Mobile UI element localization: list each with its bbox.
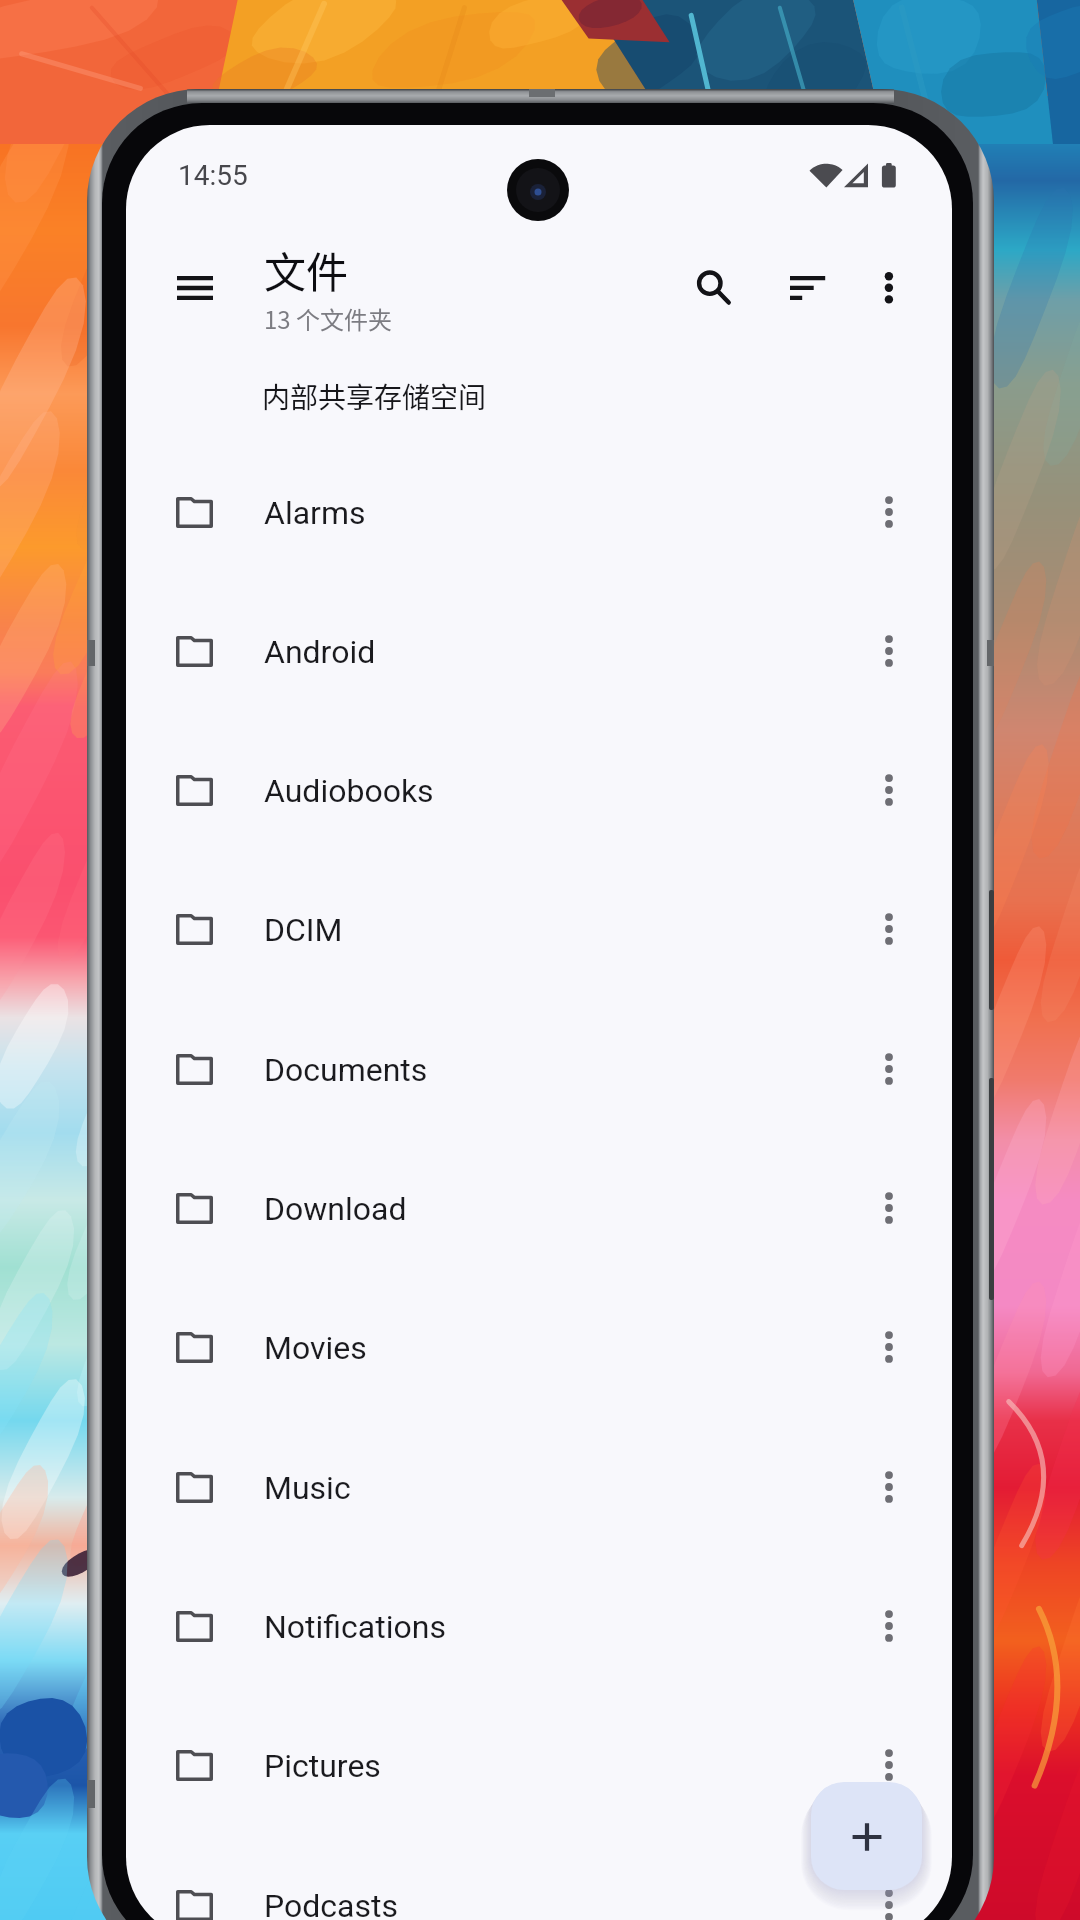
button[interactable]: More options [849, 247, 929, 327]
button[interactable]: Folder options [871, 1836, 907, 1920]
staticText: Download [264, 1190, 407, 1228]
staticText: Notifications [264, 1608, 446, 1646]
button[interactable]: Alarms [126, 443, 952, 581]
button[interactable]: Music [126, 1418, 952, 1556]
button[interactable]: Notifications [126, 1557, 952, 1695]
button[interactable]: Folder options [871, 582, 907, 720]
button[interactable]: Navigation menu [157, 248, 233, 328]
button[interactable]: Movies [126, 1278, 952, 1416]
button[interactable]: Add [811, 1782, 922, 1890]
button[interactable]: Pictures [126, 1696, 952, 1834]
staticText: 14:55 [178, 159, 248, 192]
button[interactable]: Folder options [871, 1418, 907, 1556]
button[interactable]: Podcasts [126, 1836, 952, 1920]
staticText: Alarms [264, 494, 366, 532]
staticText: Music [264, 1469, 351, 1507]
staticText: 13 个文件夹 [264, 301, 393, 336]
button[interactable]: Android [126, 582, 952, 720]
button[interactable]: Folder options [871, 1696, 907, 1834]
staticText: DCIM [264, 911, 343, 949]
button[interactable]: Download [126, 1139, 952, 1277]
staticText: Audiobooks [264, 772, 434, 810]
staticText: Pictures [264, 1747, 381, 1785]
staticText: Movies [264, 1329, 367, 1367]
button[interactable]: Folder options [871, 860, 907, 998]
staticText: Podcasts [264, 1887, 398, 1920]
button[interactable]: Folder options [871, 1278, 907, 1416]
button[interactable]: Sort [768, 248, 848, 328]
staticText: 文件 [264, 239, 349, 300]
button[interactable]: Folder options [871, 443, 907, 581]
button[interactable]: DCIM [126, 860, 952, 998]
staticText: 内部共享存储空间 [262, 376, 487, 417]
button[interactable]: Documents [126, 1000, 952, 1138]
button[interactable]: Folder options [871, 1139, 907, 1277]
staticText: Documents [264, 1051, 428, 1089]
staticText: Android [264, 633, 376, 671]
button[interactable]: Folder options [871, 1000, 907, 1138]
button[interactable]: Search [672, 245, 752, 325]
button[interactable]: Audiobooks [126, 721, 952, 859]
button[interactable]: Folder options [871, 721, 907, 859]
button[interactable]: Folder options [871, 1557, 907, 1695]
